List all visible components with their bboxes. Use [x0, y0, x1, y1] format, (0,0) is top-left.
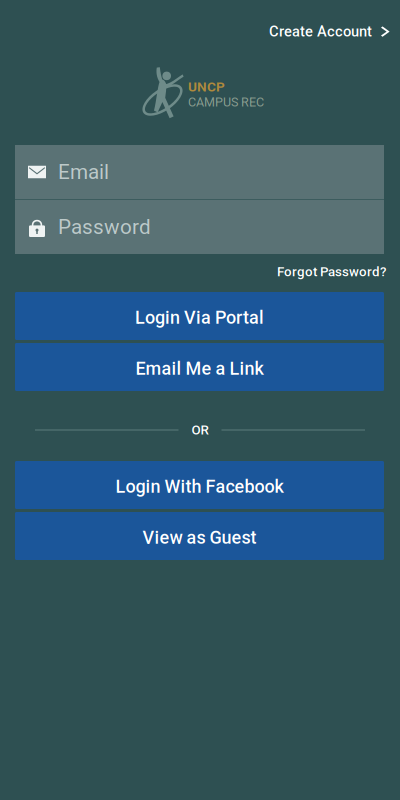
- staticText: Login Via Portal: [135, 307, 264, 328]
- staticText: Password: [58, 215, 151, 239]
- button[interactable]: Email Me a Link: [15, 343, 384, 391]
- staticText: Email: [58, 160, 109, 184]
- staticText: View as Guest: [142, 527, 256, 548]
- staticText: Login With Facebook: [115, 476, 283, 497]
- button[interactable]: View as Guest: [15, 512, 384, 560]
- staticText: Email Me a Link: [135, 358, 263, 379]
- button[interactable]: Create Account: [259, 13, 400, 50]
- staticText: Create Account: [269, 23, 372, 40]
- button[interactable]: Login With Facebook: [15, 461, 384, 509]
- staticText: UNCP: [188, 79, 225, 95]
- button[interactable]: Login Via Portal: [15, 292, 384, 340]
- staticText: Forgot Password?: [277, 264, 386, 280]
- staticText: OR: [191, 422, 208, 438]
- staticText: CAMPUS REC: [188, 95, 264, 110]
- button[interactable]: Forgot Password?: [270, 259, 393, 285]
